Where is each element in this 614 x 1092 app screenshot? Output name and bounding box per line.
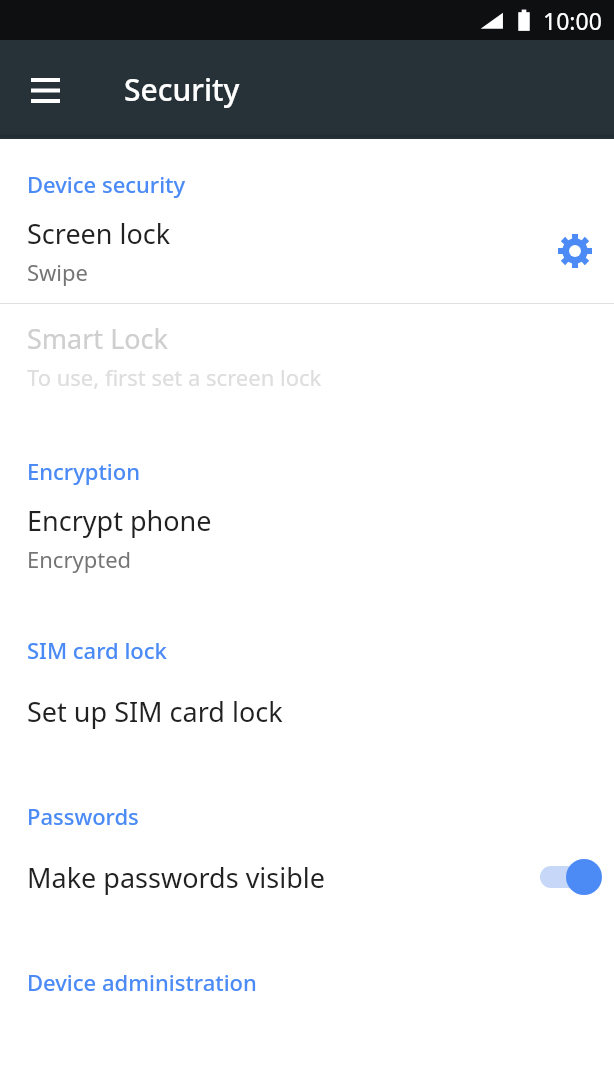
button[interactable]: Screen lock settings [536, 199, 614, 303]
staticText: Swipe [27, 257, 88, 287]
staticText: Set up SIM card lock [27, 693, 283, 730]
button[interactable]: Set up SIM card lock [0, 665, 614, 757]
button[interactable]: Open navigation menu [14, 59, 76, 121]
button[interactable]: Encrypt phone [0, 486, 614, 590]
button[interactable]: Smart Lock [0, 304, 614, 408]
staticText: Passwords [27, 801, 139, 831]
staticText: 10:00 [543, 5, 602, 36]
staticText: Make passwords visible [27, 859, 326, 896]
staticText: Encrypted [27, 544, 132, 574]
staticText: SIM card lock [27, 635, 167, 665]
staticText: Smart Lock [27, 320, 168, 357]
button[interactable]: Make passwords visible toggle, on [540, 857, 602, 897]
button[interactable]: Make passwords visible [0, 831, 614, 923]
staticText: Security [124, 69, 240, 110]
button[interactable]: Screen lock [0, 199, 614, 303]
staticText: Device security [27, 169, 186, 199]
staticText: Encrypt phone [27, 502, 212, 539]
staticText: Device administration [27, 967, 257, 997]
staticText: Encryption [27, 456, 141, 486]
staticText: To use, first set a screen lock [27, 362, 322, 392]
staticText: Screen lock [27, 215, 171, 252]
